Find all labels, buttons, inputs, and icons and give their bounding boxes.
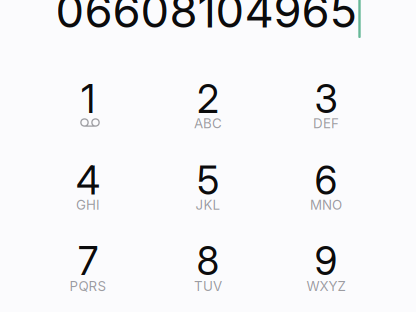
staticText: 7 — [78, 238, 98, 284]
button[interactable]: 5 JKL — [152, 145, 264, 215]
button[interactable]: 1 voicemail — [32, 64, 144, 134]
staticText: 2 — [197, 76, 219, 122]
staticText: MNO — [310, 197, 342, 213]
staticText: TUV — [194, 278, 222, 294]
staticText: 5 — [197, 157, 219, 204]
staticText: 1 — [81, 76, 95, 122]
button[interactable]: 6 MNO — [270, 145, 382, 215]
staticText: 9 — [314, 238, 337, 284]
button[interactable]: 2 ABC — [152, 64, 264, 134]
button[interactable]: 3 DEF — [270, 64, 382, 134]
staticText: WXYZ — [306, 278, 345, 294]
staticText: 4 — [76, 157, 100, 204]
button[interactable]: 8 TUV — [152, 226, 264, 296]
button[interactable]: 4 GHI — [32, 145, 144, 215]
staticText: 6 — [314, 157, 337, 204]
staticText: ABC — [194, 115, 222, 131]
staticText: PQRS — [69, 278, 106, 294]
staticText: DEF — [313, 115, 339, 131]
staticText: 06608104965 — [55, 0, 357, 38]
button[interactable]: 7 PQRS — [32, 226, 144, 296]
staticText: JKL — [195, 197, 220, 213]
button[interactable]: 06608104965 — [55, 0, 357, 39]
staticText: GHI — [76, 197, 100, 213]
staticText: 3 — [314, 76, 337, 122]
button[interactable]: 9 WXYZ — [270, 226, 382, 296]
staticText: 8 — [196, 238, 219, 284]
